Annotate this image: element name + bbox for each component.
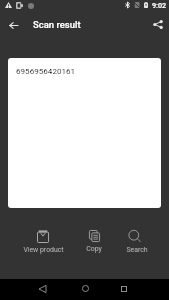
- staticText: Scan result: [33, 19, 81, 30]
- button[interactable]: Back: [3, 15, 23, 35]
- staticText: Search: [126, 246, 148, 254]
- button[interactable]: View product: [19, 224, 67, 262]
- staticText: Copy: [86, 245, 102, 253]
- button[interactable]: Copy: [70, 224, 118, 262]
- button[interactable]: Search: [113, 224, 161, 262]
- button[interactable]: Back: [28, 278, 56, 299]
- staticText: 9:02: [152, 1, 167, 9]
- staticText: View product: [23, 246, 64, 254]
- button[interactable]: Home: [71, 278, 99, 299]
- button[interactable]: Share: [148, 14, 168, 34]
- button[interactable]: Recents: [110, 278, 138, 299]
- staticText: 6956956420161: [16, 66, 76, 75]
